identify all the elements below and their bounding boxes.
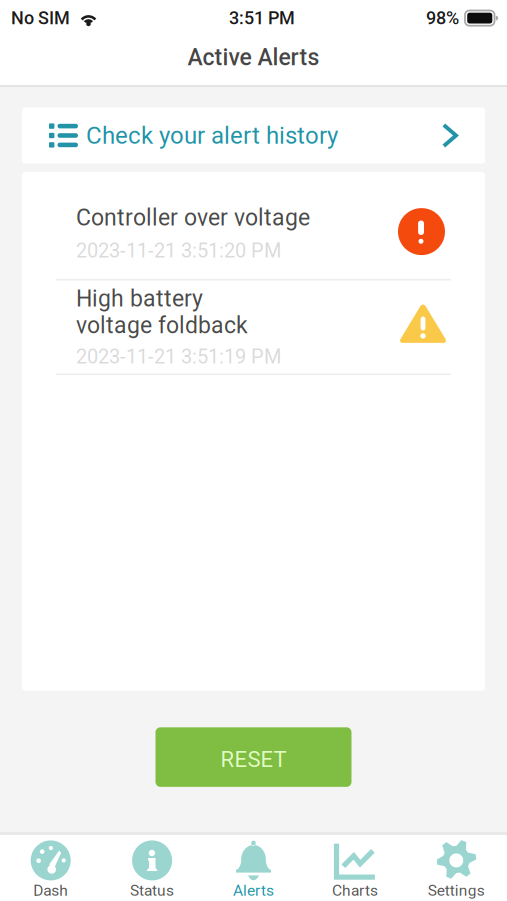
- staticText: 2023-11-21 3:51:20 PM: [76, 239, 281, 262]
- staticText: Active Alerts: [187, 44, 319, 71]
- staticText: Controller over voltage: [76, 204, 310, 231]
- staticText: Dash: [33, 881, 68, 900]
- staticText: 3:51 PM: [229, 7, 295, 29]
- staticText: Check your alert history: [86, 121, 338, 149]
- staticText: Settings: [428, 881, 485, 900]
- button[interactable]: Check your alert history: [22, 107, 485, 163]
- staticText: High battery: [76, 285, 203, 312]
- staticText: 98%: [426, 7, 459, 29]
- button[interactable]: Dash: [0, 835, 101, 900]
- staticText: Charts: [332, 881, 378, 900]
- button[interactable]: Status: [101, 835, 203, 900]
- button[interactable]: Settings: [406, 835, 507, 900]
- staticText: Status: [130, 881, 174, 900]
- staticText: 2023-11-21 3:51:19 PM: [76, 345, 281, 368]
- staticText: voltage foldback: [76, 312, 248, 339]
- button[interactable]: Charts: [304, 835, 406, 900]
- staticText: Alerts: [233, 881, 274, 900]
- staticText: RESET: [220, 747, 286, 772]
- button[interactable]: RESET: [155, 727, 351, 787]
- staticText: No SIM: [11, 7, 70, 29]
- button[interactable]: Alerts: [203, 835, 304, 900]
